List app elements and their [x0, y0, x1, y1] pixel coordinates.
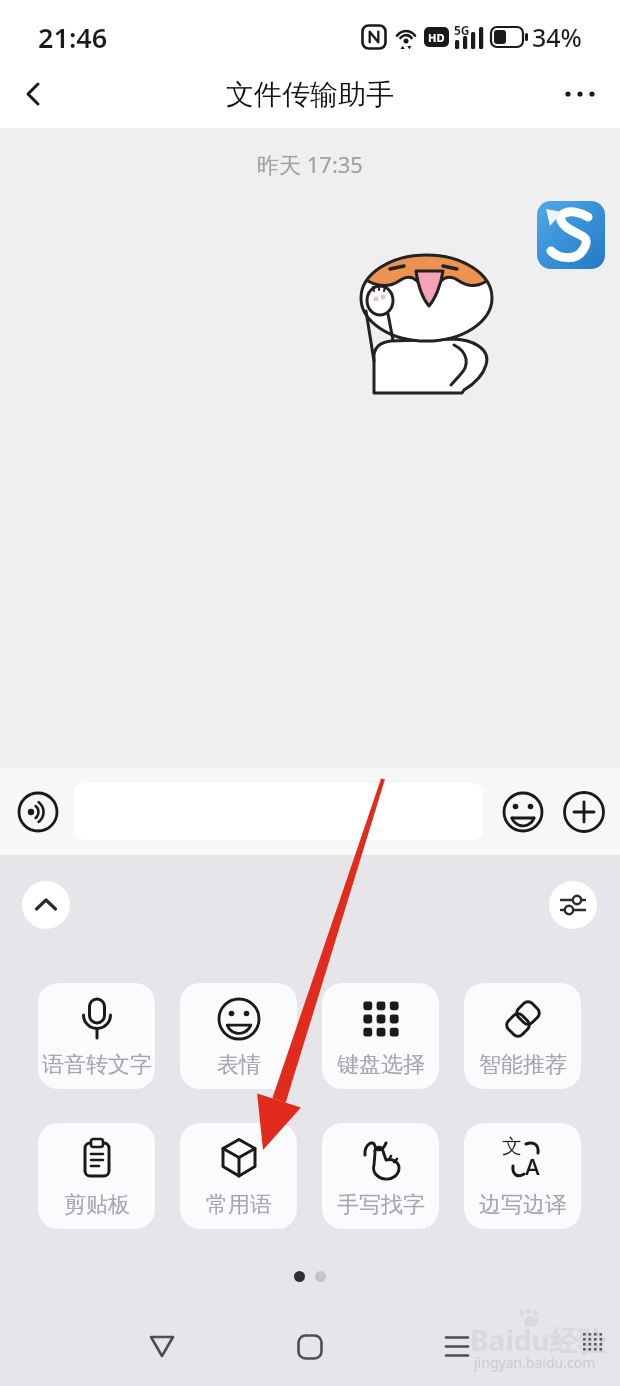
button[interactable]: [22, 881, 70, 929]
staticText: 语音转文字: [42, 1051, 152, 1079]
button[interactable]: [139, 1324, 185, 1370]
button[interactable]: [16, 790, 60, 834]
button[interactable]: [501, 790, 545, 834]
button[interactable]: 语音转文字: [38, 983, 155, 1089]
button[interactable]: 文: [464, 1123, 581, 1229]
staticText: 昨天 17:35: [257, 149, 363, 179]
staticText: HD: [428, 30, 445, 45]
button[interactable]: 常用语: [180, 1123, 297, 1229]
button[interactable]: [12, 72, 56, 116]
button[interactable]: 键盘选择: [322, 983, 439, 1089]
button[interactable]: [434, 1324, 480, 1370]
staticText: jingyan.baidu.com: [474, 1353, 596, 1372]
staticText: 5G: [454, 22, 470, 38]
button[interactable]: [558, 72, 602, 116]
staticText: 边写边译: [479, 1191, 567, 1219]
button[interactable]: [74, 783, 483, 840]
staticText: 键盘选择: [337, 1051, 425, 1079]
staticText: 常用语: [206, 1191, 272, 1219]
staticText: 表情: [217, 1051, 261, 1079]
button[interactable]: 智能推荐: [464, 983, 581, 1089]
staticText: 21:46: [38, 19, 108, 56]
button[interactable]: 剪贴板: [38, 1123, 155, 1229]
staticText: 文件传输助手: [226, 77, 394, 112]
button[interactable]: 手写找字: [322, 1123, 439, 1229]
staticText: Baidu经验: [470, 1321, 606, 1359]
staticText: 剪贴板: [64, 1191, 130, 1219]
button[interactable]: [562, 790, 606, 834]
staticText: 智能推荐: [479, 1051, 567, 1079]
staticText: 34%: [532, 20, 582, 54]
staticText: 手写找字: [337, 1191, 425, 1219]
staticText: A: [525, 1151, 540, 1181]
button[interactable]: 表情: [180, 983, 297, 1089]
button[interactable]: [549, 881, 597, 929]
button[interactable]: [287, 1324, 333, 1370]
staticText: 文: [502, 1134, 522, 1159]
